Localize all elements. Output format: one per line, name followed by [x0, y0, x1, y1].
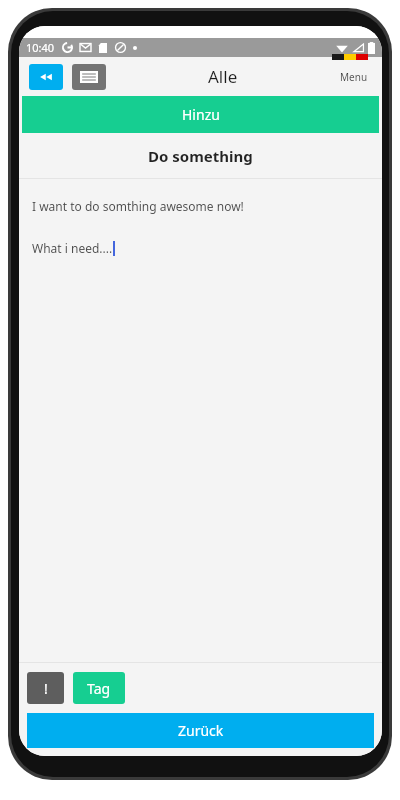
button[interactable]: Hinzu — [22, 96, 379, 133]
staticText: Menu — [340, 70, 368, 84]
button[interactable]: Tastatur — [72, 64, 106, 90]
button[interactable]: Tag — [73, 672, 125, 704]
staticText: Zurück — [178, 721, 224, 740]
staticText: Do something — [148, 146, 253, 166]
button[interactable]: Zurück — [27, 713, 374, 748]
button[interactable]: Zurückspulen — [29, 64, 63, 90]
staticText: I want to do somthing awesome now! — [32, 198, 244, 214]
staticText: Alle — [208, 65, 238, 88]
staticText: 10:40 — [26, 40, 55, 55]
staticText: Hinzu — [182, 105, 220, 124]
button[interactable]: ! — [27, 672, 64, 704]
staticText: Tag — [87, 679, 111, 698]
staticText: ! — [44, 679, 48, 698]
staticText: What i need.... — [32, 240, 113, 256]
button[interactable]: Menu — [340, 70, 368, 84]
